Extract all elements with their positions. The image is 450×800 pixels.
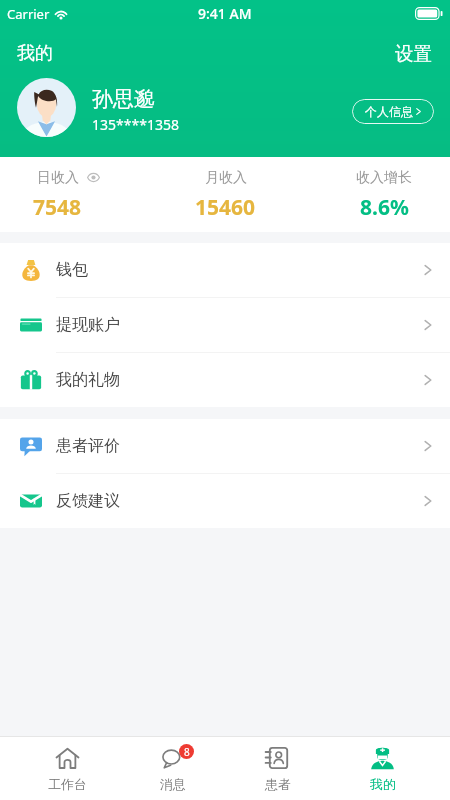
button[interactable]: 患者评价 — [0, 419, 450, 473]
button[interactable]: 反馈建议 — [0, 474, 450, 528]
button[interactable]: 提现账户 — [0, 298, 450, 352]
button[interactable]: 日收入 — [0, 157, 117, 232]
staticText: 孙思邈 — [92, 86, 155, 112]
staticText: 月收入 — [205, 169, 247, 187]
button[interactable]: 个人信息 — [352, 99, 434, 124]
staticText: 提现账户 — [56, 315, 120, 335]
staticText: 8.6% — [360, 193, 409, 222]
staticText: 9:41 AM — [198, 4, 252, 23]
staticText: 8 — [184, 745, 190, 759]
button[interactable]: 我的礼物 — [0, 353, 450, 407]
button[interactable]: 钱包 — [0, 243, 450, 297]
button[interactable]: 8 — [120, 737, 225, 792]
staticText: 个人信息 — [365, 104, 413, 119]
staticText: 7548 — [33, 193, 82, 222]
staticText: 消息 — [160, 776, 186, 792]
staticText: 设置 — [395, 42, 432, 64]
button[interactable]: 我的 — [330, 737, 435, 792]
staticText: 我的 — [17, 42, 53, 65]
button[interactable]: 月收入 — [165, 157, 285, 232]
button[interactable]: 工作台 — [15, 737, 120, 792]
staticText: 我的 — [370, 776, 396, 792]
staticText: Carrier — [7, 5, 50, 23]
button[interactable]: 患者 — [225, 737, 330, 792]
staticText: 钱包 — [56, 260, 88, 280]
other: Battery — [415, 7, 443, 20]
button[interactable]: 收入增长 — [324, 157, 444, 232]
staticText: 我的礼物 — [56, 370, 120, 390]
staticText: 日收入 — [37, 169, 79, 187]
staticText: 患者 — [265, 776, 291, 792]
staticText: 15460 — [195, 193, 256, 222]
staticText: 工作台 — [48, 776, 87, 792]
staticText: 收入增长 — [356, 169, 412, 187]
staticText: 患者评价 — [56, 436, 120, 456]
staticText: 反馈建议 — [56, 491, 120, 511]
staticText: 135****1358 — [92, 115, 179, 134]
button[interactable]: 设置 — [391, 38, 436, 68]
other: Toggle income visibility — [87, 173, 100, 182]
